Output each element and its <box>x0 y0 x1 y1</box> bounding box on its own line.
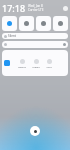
staticText: 17:18 <box>2 2 26 14</box>
staticText: Silent <box>8 34 16 38</box>
button[interactable] <box>2 41 68 48</box>
staticText: Carrier LTE <box>28 8 44 12</box>
button[interactable]: Silent <box>2 33 68 39</box>
button[interactable]: Toggle <box>36 16 51 31</box>
button[interactable]: App <box>4 60 10 66</box>
button[interactable]: Toggle <box>19 16 34 31</box>
staticText: Media <box>32 65 40 68</box>
button[interactable]: Toggle <box>53 16 68 31</box>
button[interactable]: Unlock <box>30 126 40 136</box>
staticText: Wed, Jan 8 <box>28 4 43 8</box>
staticText: Cast <box>46 65 52 68</box>
staticText: Device <box>18 65 26 68</box>
button[interactable]: Toggle <box>2 16 17 31</box>
button[interactable]: Settings <box>63 6 68 11</box>
